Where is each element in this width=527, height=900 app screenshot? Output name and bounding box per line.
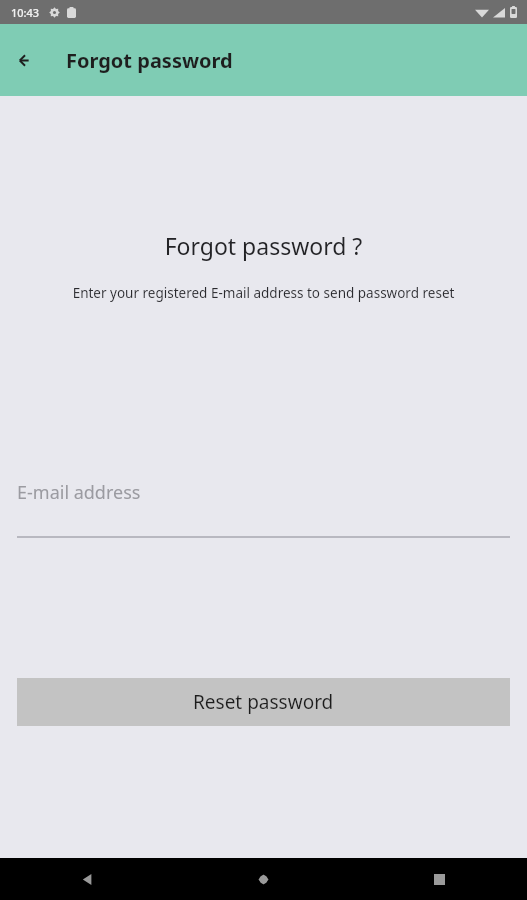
button[interactable]: Recent apps bbox=[351, 858, 527, 900]
staticText: 10:43 bbox=[11, 5, 40, 20]
button[interactable]: Reset password bbox=[17, 678, 510, 726]
staticText: Reset password bbox=[193, 689, 334, 715]
button[interactable]: Home bbox=[175, 858, 351, 900]
button[interactable]: E-mail address bbox=[17, 480, 510, 538]
button[interactable]: Back bbox=[5, 40, 45, 80]
staticText: Forgot password ? bbox=[0, 230, 527, 261]
staticText: Enter your registered E-mail address to … bbox=[44, 284, 483, 302]
button[interactable]: Back bbox=[0, 858, 175, 900]
staticText: E-mail address bbox=[17, 480, 141, 505]
staticText: Forgot password bbox=[66, 47, 233, 74]
